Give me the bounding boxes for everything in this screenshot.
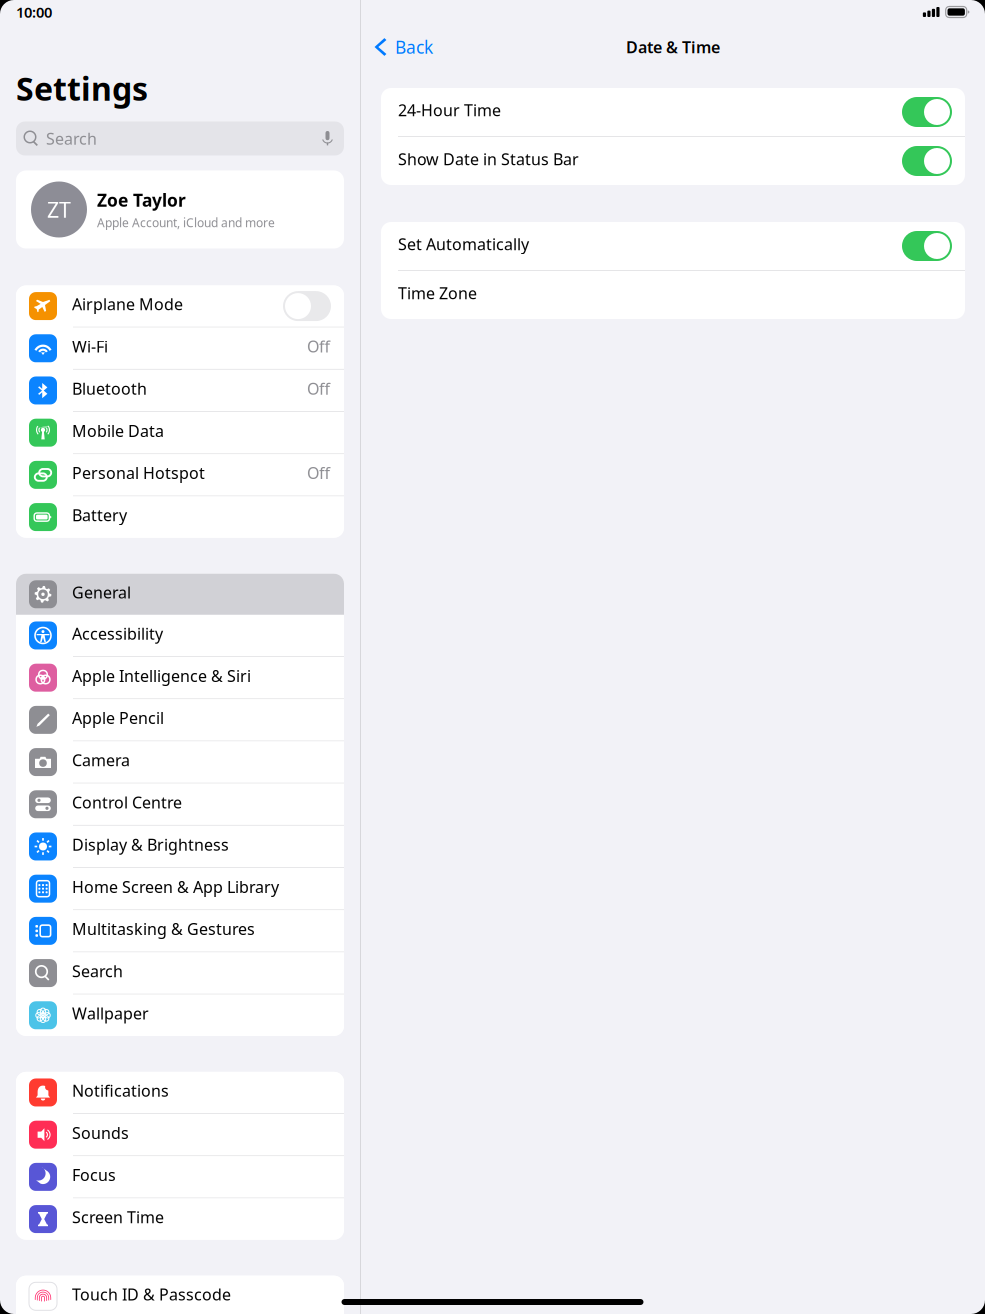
staticText: Personal Hotspot (72, 462, 205, 483)
staticText: Search (46, 128, 97, 149)
button[interactable]: Apple Intelligence & Siri (16, 657, 344, 698)
staticText: General (72, 582, 131, 603)
staticText: Airplane Mode (72, 293, 183, 315)
button[interactable]: Control Centre (16, 784, 344, 825)
button[interactable]: Search (0, 121, 360, 155)
staticText: Off (307, 336, 330, 357)
staticText: Bluetooth (72, 378, 147, 399)
button[interactable]: Battery (16, 496, 344, 538)
staticText: Touch ID & Passcode (72, 1284, 231, 1305)
staticText: ZT (47, 195, 71, 224)
button[interactable]: 24-Hour Time (381, 88, 965, 136)
staticText: Settings (16, 67, 148, 109)
button[interactable]: Personal Hotspot (16, 454, 344, 495)
staticText: Apple Pencil (72, 707, 164, 728)
staticText: Zoe Taylor (97, 188, 186, 211)
staticText: Notifications (72, 1080, 169, 1101)
staticText: Off (307, 378, 330, 399)
staticText: Accessibility (72, 623, 163, 644)
staticText: Set Automatically (398, 233, 529, 255)
button[interactable]: Search (16, 952, 344, 994)
button[interactable]: Set Automatically (381, 222, 965, 270)
button[interactable]: Notifications (16, 1072, 344, 1113)
button[interactable]: Mobile Data (16, 412, 344, 453)
staticText: Control Centre (72, 792, 182, 813)
button[interactable]: Sounds (16, 1114, 344, 1155)
staticText: Wallpaper (72, 1003, 149, 1024)
staticText: 10:00 (16, 2, 52, 22)
button[interactable]: Camera (16, 741, 344, 783)
staticText: Battery (72, 504, 127, 526)
button[interactable]: Focus (16, 1156, 344, 1197)
staticText: Focus (72, 1164, 116, 1185)
button[interactable]: Multitasking & Gestures (16, 910, 344, 951)
staticText: Time Zone (398, 282, 477, 304)
staticText: Mobile Data (72, 420, 164, 441)
button[interactable]: Home Screen & App Library (16, 868, 344, 909)
button[interactable]: Airplane Mode (16, 285, 344, 327)
staticText: Off (307, 462, 330, 483)
staticText: Wi-Fi (72, 336, 108, 357)
staticText: Display & Brightness (72, 834, 229, 855)
button[interactable]: Screen Time (16, 1198, 344, 1240)
staticText: Apple Intelligence & Siri (72, 665, 251, 686)
button[interactable]: Touch ID & Passcode (16, 1276, 344, 1314)
button[interactable]: Bluetooth (16, 370, 344, 411)
staticText: Show Date in Status Bar (398, 148, 579, 170)
button[interactable]: ZT (16, 170, 344, 248)
button[interactable]: General (16, 574, 344, 615)
staticText: 24-Hour Time (398, 99, 501, 121)
staticText: Multitasking & Gestures (72, 918, 255, 939)
staticText: Search (72, 960, 123, 982)
staticText: Screen Time (72, 1206, 164, 1228)
staticText: Apple Account, iCloud and more (97, 214, 275, 230)
staticText: Camera (72, 749, 130, 771)
staticText: Date & Time (626, 36, 720, 58)
button[interactable]: Wi-Fi (16, 328, 344, 369)
button[interactable]: Time Zone (381, 271, 965, 319)
button[interactable]: Show Date in Status Bar (381, 137, 965, 185)
button[interactable]: Wallpaper (16, 995, 344, 1036)
button[interactable]: Accessibility (16, 615, 344, 656)
button[interactable]: Display & Brightness (16, 826, 344, 867)
staticText: Sounds (72, 1122, 129, 1143)
staticText: Home Screen & App Library (72, 876, 279, 897)
button[interactable]: Apple Pencil (16, 699, 344, 740)
staticText: Back (395, 35, 433, 58)
button[interactable]: Back (370, 32, 437, 62)
